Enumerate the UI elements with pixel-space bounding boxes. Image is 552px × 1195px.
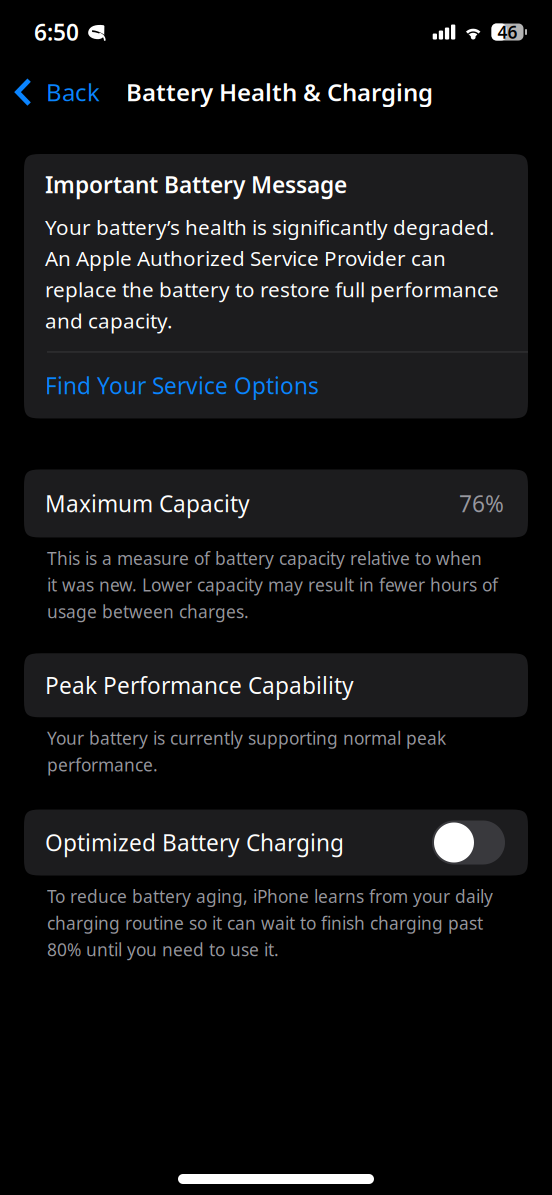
staticText: 6:50 — [34, 17, 79, 47]
staticText: 76% — [459, 488, 504, 519]
staticText: Find Your Service Options — [45, 370, 319, 401]
button[interactable]: Maximum Capacity — [24, 469, 528, 537]
staticText: Battery Health & Charging — [126, 76, 433, 108]
button[interactable]: Optimized Battery Charging — [24, 809, 528, 875]
staticText: To reduce battery aging, iPhone learns f… — [47, 884, 493, 961]
staticText: This is a measure of battery capacity re… — [47, 546, 498, 623]
staticText: Optimized Battery Charging — [45, 827, 344, 858]
staticText: Maximum Capacity — [45, 488, 250, 519]
button[interactable]: Peak Performance Capability — [24, 653, 528, 717]
staticText: Important Battery Message — [45, 169, 347, 200]
staticText: Your battery is currently supporting nor… — [47, 726, 446, 776]
staticText: Peak Performance Capability — [45, 670, 354, 701]
staticText: 46 — [497, 20, 517, 44]
staticText: Back — [46, 76, 100, 108]
staticText: Your battery’s health is significantly d… — [45, 213, 499, 334]
button[interactable]: Back — [0, 64, 110, 120]
button[interactable]: Find Your Service Options — [24, 352, 528, 418]
